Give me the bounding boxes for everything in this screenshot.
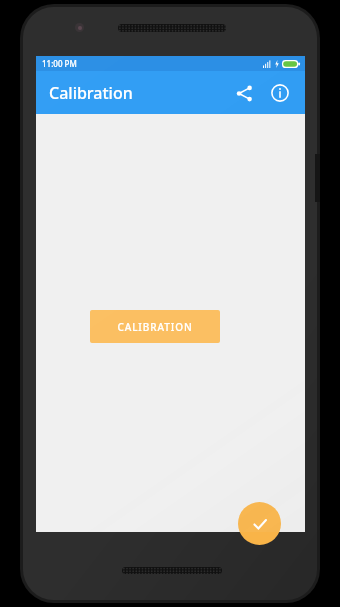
button[interactable]: Confirm [238,502,281,545]
button[interactable]: CALIBRATION [90,310,220,343]
button[interactable]: Share [227,76,261,110]
staticText: 11:00 PM [42,58,77,69]
button[interactable]: Info [263,76,297,110]
staticText: Calibration [49,82,133,104]
staticText: CALIBRATION [117,320,193,334]
